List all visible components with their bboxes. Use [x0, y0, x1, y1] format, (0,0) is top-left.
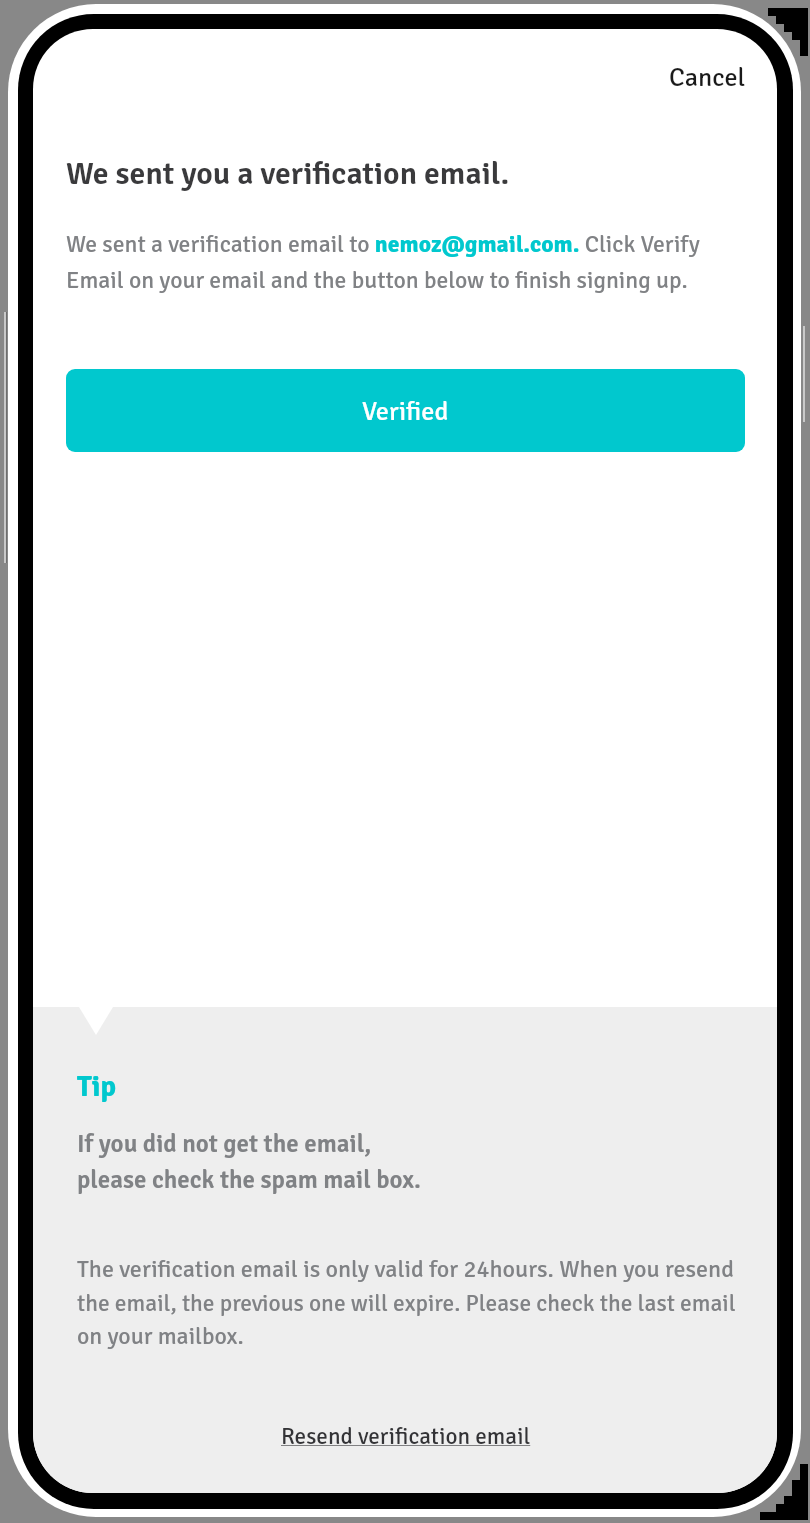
staticText: The verification email is only valid for…: [77, 1254, 734, 1284]
button[interactable]: Verified: [66, 369, 745, 452]
staticText: the email, the previous one will expire.…: [77, 1289, 736, 1318]
staticText: Resend verification email: [281, 1422, 531, 1451]
staticText: Cancel: [669, 61, 746, 93]
staticText: If you did not get the email,: [77, 1128, 372, 1159]
staticText: Verified: [362, 395, 449, 427]
staticText: We sent a verification email to nemoz@gm…: [66, 230, 746, 295]
staticText: Tip: [77, 1069, 117, 1105]
staticText: please check the spam mail box.: [77, 1164, 421, 1195]
staticText: on your mailbox.: [77, 1322, 244, 1351]
button[interactable]: Resend verification email: [261, 1408, 551, 1465]
staticText: We sent you a verification email.: [66, 154, 510, 193]
button[interactable]: Cancel: [651, 49, 764, 105]
